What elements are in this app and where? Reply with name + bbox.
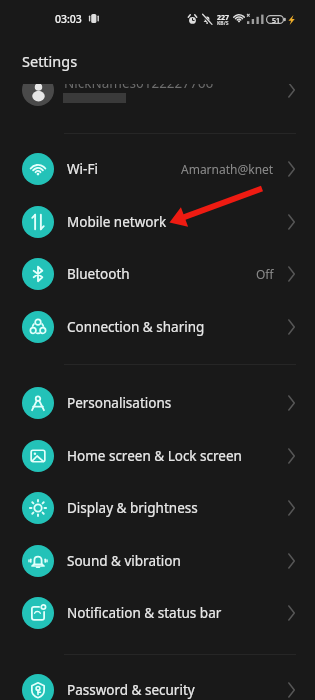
button[interactable]: Bluetooth bbox=[0, 248, 315, 300]
staticText: Connection & sharing bbox=[67, 318, 205, 336]
button[interactable]: Personalisations bbox=[0, 377, 315, 429]
staticText: Bluetooth bbox=[67, 265, 130, 283]
staticText: Personalisations bbox=[67, 394, 172, 412]
button[interactable]: Mobile network bbox=[0, 196, 315, 248]
staticText: Mobile network bbox=[67, 213, 167, 231]
staticText: 227 bbox=[217, 13, 230, 23]
button[interactable]: Notification & status bar bbox=[0, 587, 315, 639]
staticText: KB/S bbox=[217, 20, 229, 27]
staticText: Notification & status bar bbox=[67, 604, 222, 622]
button[interactable]: Connection & sharing bbox=[0, 301, 315, 353]
button[interactable]: Home screen & Lock screen bbox=[0, 430, 315, 482]
staticText: Home screen & Lock screen bbox=[67, 447, 242, 465]
staticText: 03:03 bbox=[55, 12, 82, 26]
staticText: Wi-Fi bbox=[67, 160, 98, 178]
staticText: NickNames0122227766 bbox=[64, 84, 214, 92]
staticText: Sound & vibration bbox=[67, 552, 181, 570]
staticText: Display & brightness bbox=[67, 499, 198, 517]
button[interactable]: Password & security bbox=[0, 664, 315, 700]
button[interactable]: Display & brightness bbox=[0, 482, 315, 534]
staticText: Password & security bbox=[67, 681, 195, 699]
staticText: Amarnath@knet bbox=[181, 161, 274, 177]
button[interactable]: Sound & vibration bbox=[0, 535, 315, 587]
staticText: Off bbox=[256, 266, 274, 282]
button[interactable]: Wi-Fi bbox=[0, 143, 315, 195]
staticText: Settings bbox=[22, 51, 78, 71]
staticText: 51 bbox=[272, 16, 281, 26]
button[interactable]: NickNames0122227766 bbox=[0, 84, 315, 116]
